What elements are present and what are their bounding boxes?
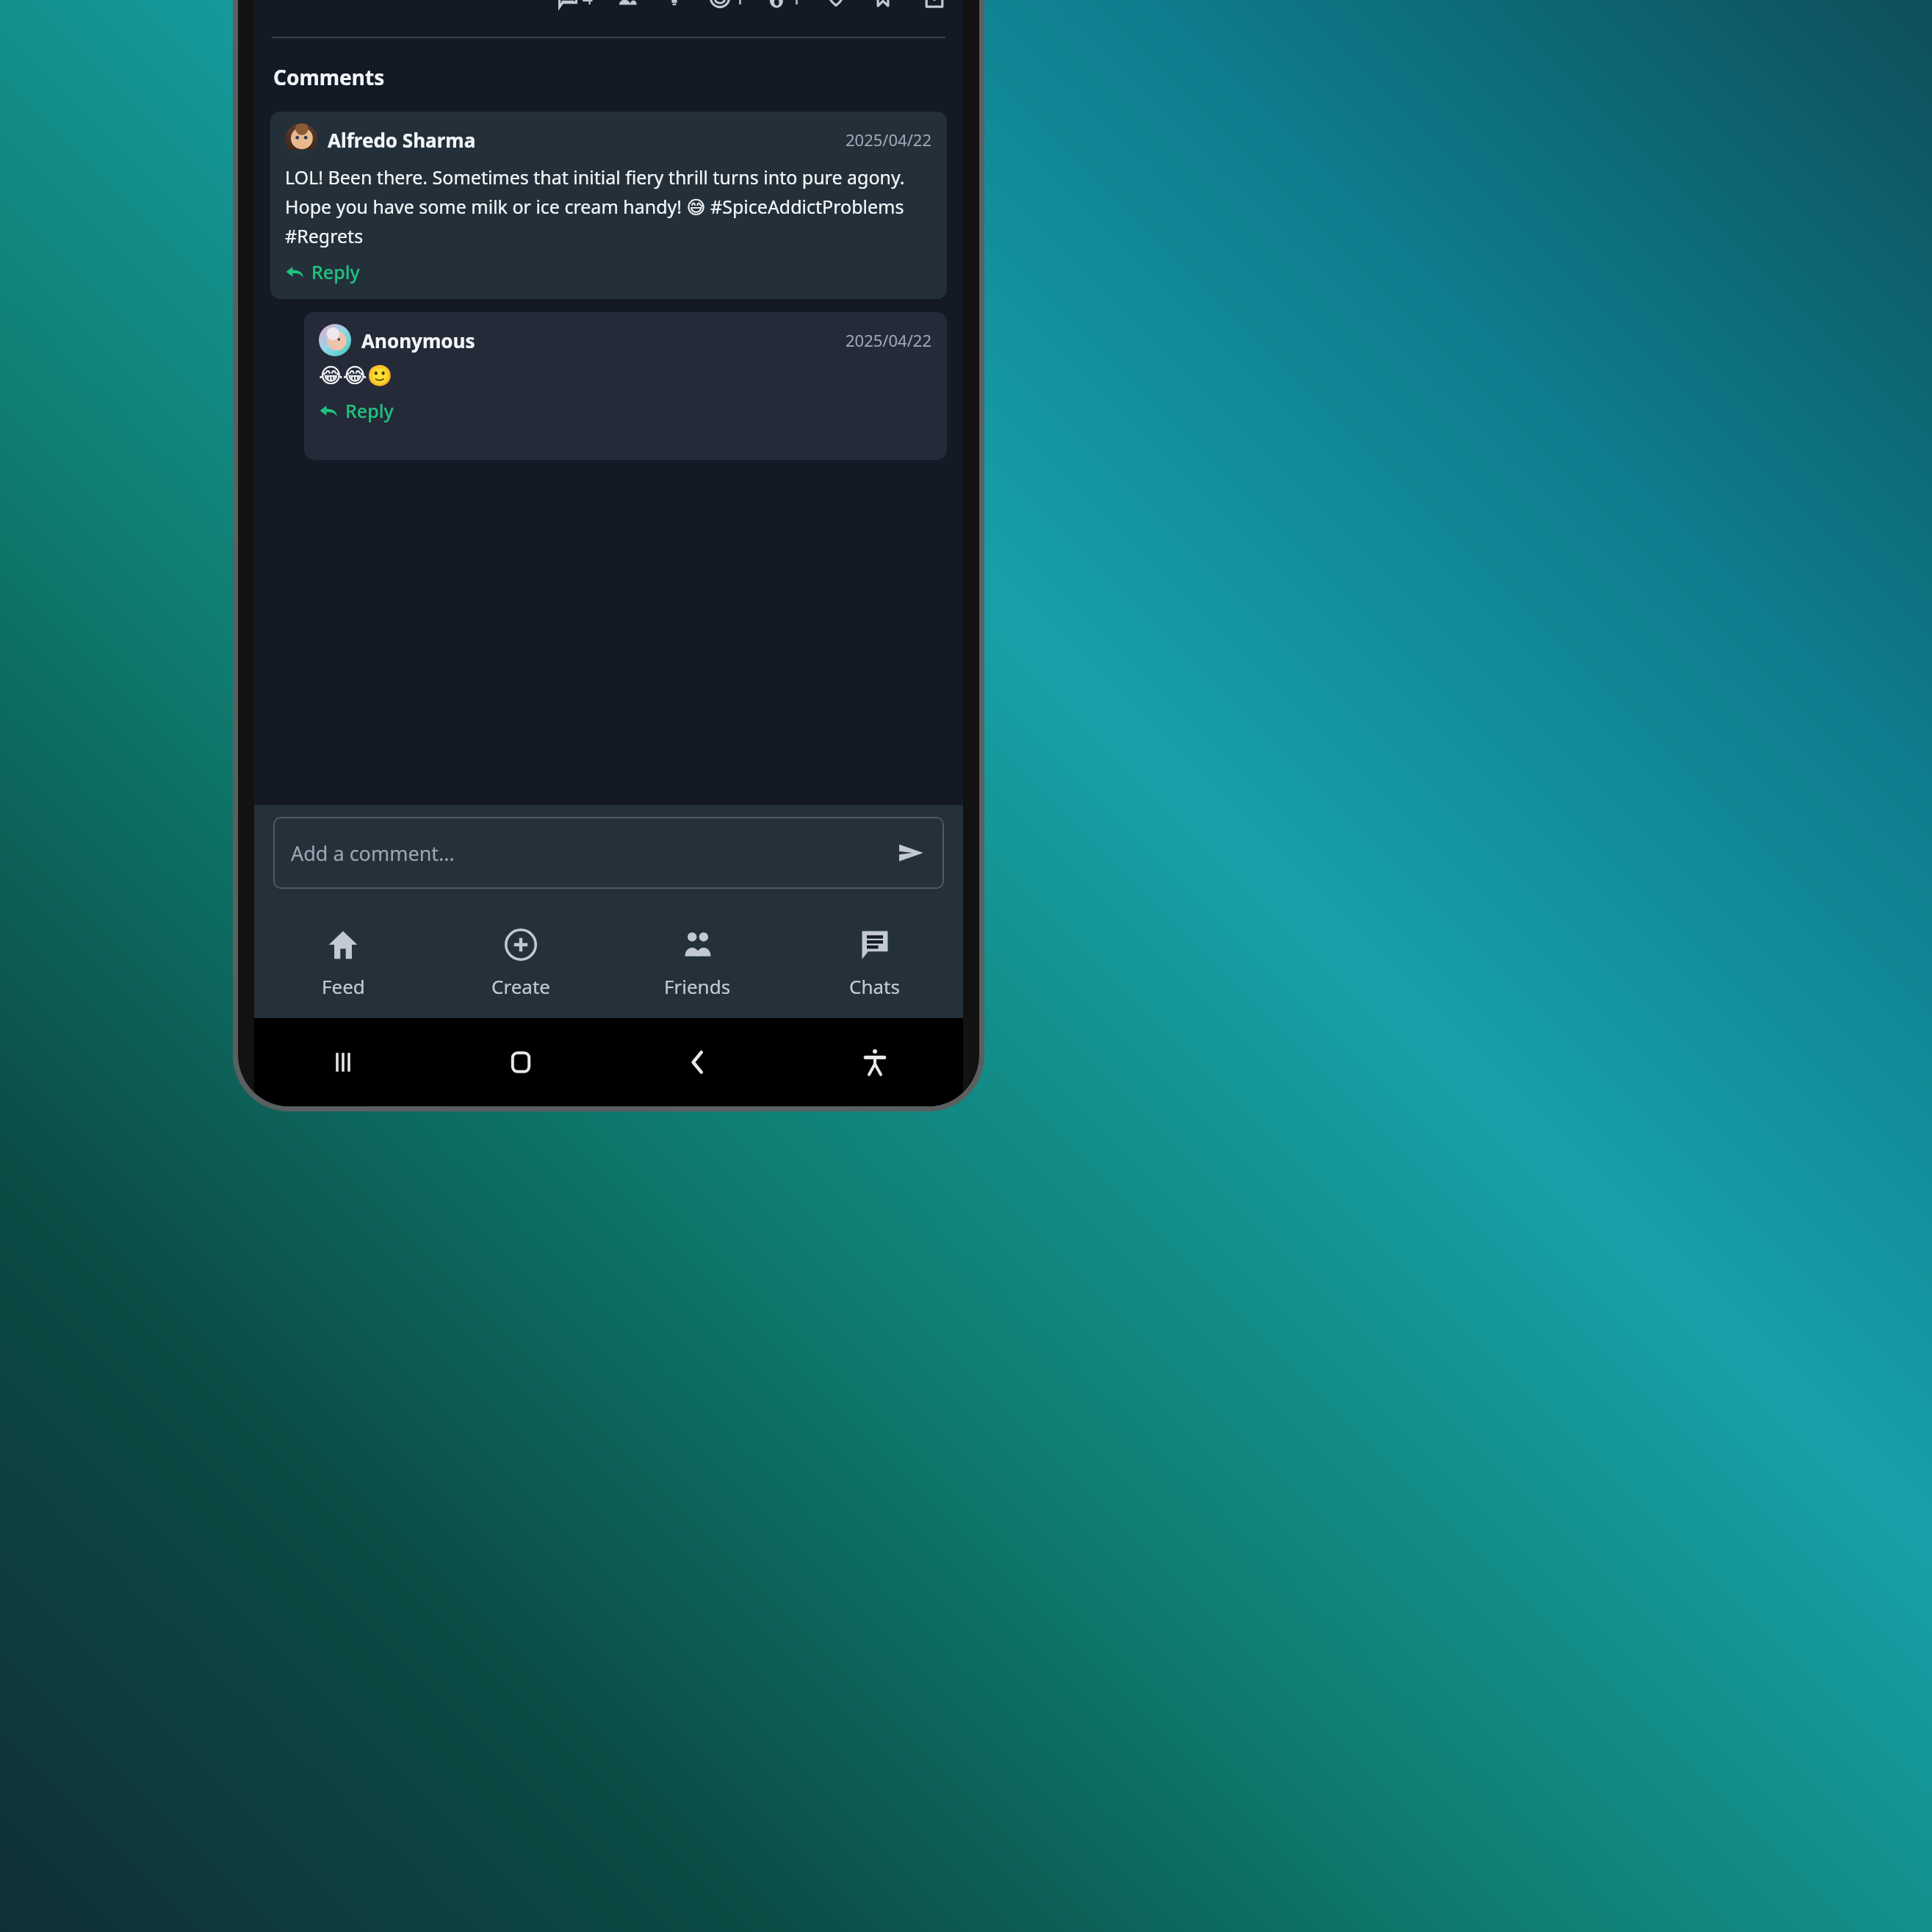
button[interactable]: Like (823, 0, 848, 10)
button[interactable]: Fire reaction (765, 0, 801, 10)
button[interactable]: Reply (319, 395, 394, 426)
button[interactable]: Home (432, 1018, 609, 1106)
staticText: Reply (345, 398, 394, 423)
button[interactable]: Comments (557, 0, 593, 10)
button[interactable]: Chats (786, 908, 963, 1018)
button[interactable]: Friends (609, 908, 786, 1018)
staticText: Alfredo Sharma (328, 127, 476, 153)
button[interactable]: Idea (662, 0, 687, 10)
staticText: Friends (664, 973, 731, 999)
button[interactable]: Create (432, 908, 609, 1018)
button[interactable]: Send (895, 837, 926, 868)
button[interactable]: Accessibility (786, 1018, 963, 1106)
staticText: 1 (735, 0, 745, 10)
staticText: Reply (311, 259, 360, 284)
staticText: Chats (849, 973, 900, 999)
button[interactable]: Share (922, 0, 947, 10)
staticText: LOL! Been there. Sometimes that initial … (285, 165, 932, 249)
button[interactable]: Reply (285, 256, 360, 287)
button[interactable]: Back (609, 1018, 786, 1106)
button[interactable]: Add a comment... (273, 817, 944, 889)
staticText: Create (491, 973, 550, 999)
button[interactable]: Bookmark (871, 0, 895, 10)
staticText: Feed (322, 973, 365, 999)
staticText: 1 (791, 0, 801, 10)
button[interactable]: Alfredo Sharma (270, 112, 947, 299)
button[interactable]: Smile reaction (709, 0, 745, 10)
staticText: Anonymous (361, 328, 475, 353)
staticText: Add a comment... (291, 840, 455, 867)
button[interactable]: Feed (254, 908, 432, 1018)
staticText: 2025/04/22 (846, 329, 932, 351)
staticText: Comments (273, 63, 385, 91)
button[interactable]: Anonymous (304, 312, 947, 460)
button[interactable]: Group (615, 0, 640, 10)
staticText: 4 (583, 0, 593, 10)
staticText: 2025/04/22 (846, 129, 932, 151)
staticText: 😂😂🙂 (319, 364, 393, 388)
button[interactable]: Recents (254, 1018, 432, 1106)
